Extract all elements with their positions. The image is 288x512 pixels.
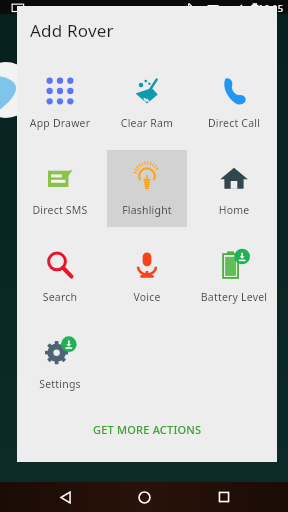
button[interactable]: Flashlight bbox=[107, 150, 187, 227]
staticText: App Drawer bbox=[20, 116, 100, 130]
button[interactable]: Home bbox=[129, 482, 159, 512]
button[interactable]: Recent apps bbox=[209, 482, 239, 512]
button[interactable]: Voice bbox=[107, 237, 187, 314]
staticText: Direct SMS bbox=[20, 203, 100, 217]
button[interactable]: GET MORE ACTIONS bbox=[85, 418, 210, 441]
staticText: Settings bbox=[20, 377, 100, 391]
staticText: Clear Ram bbox=[107, 116, 187, 130]
staticText: Home bbox=[194, 203, 274, 217]
staticText: Direct Call bbox=[194, 116, 274, 130]
staticText: Flashlight bbox=[107, 203, 187, 217]
button[interactable]: Settings bbox=[20, 324, 100, 401]
staticText: Battery Level bbox=[194, 290, 274, 304]
staticText: GET MORE ACTIONS bbox=[93, 422, 202, 437]
button[interactable]: Direct SMS bbox=[20, 150, 100, 227]
button[interactable]: Search bbox=[20, 237, 100, 314]
staticText: Add Rover bbox=[30, 19, 114, 42]
button[interactable]: Direct Call bbox=[194, 63, 274, 140]
button[interactable]: Clear Ram bbox=[107, 63, 187, 140]
button[interactable]: App Drawer bbox=[20, 63, 100, 140]
staticText: Search bbox=[20, 290, 100, 304]
staticText: 16:15 bbox=[258, 2, 284, 15]
button[interactable]: Back bbox=[50, 482, 80, 512]
staticText: Voice bbox=[107, 290, 187, 304]
button[interactable]: Battery Level bbox=[194, 237, 274, 314]
button[interactable]: Home bbox=[194, 150, 274, 227]
